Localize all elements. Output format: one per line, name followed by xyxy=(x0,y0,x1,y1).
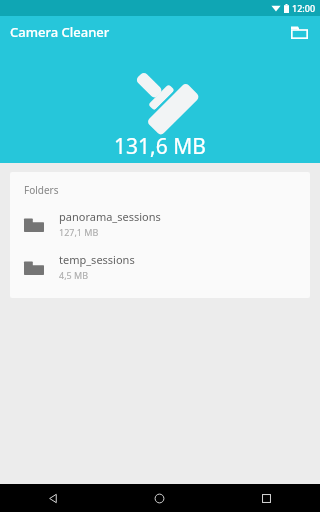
staticText: 127,1 MB xyxy=(59,226,99,238)
button[interactable]: Recent apps xyxy=(213,484,320,512)
button[interactable]: temp_sessions xyxy=(10,249,310,284)
staticText: 131,6 MB xyxy=(0,132,320,161)
button[interactable]: panorama_sessions xyxy=(10,206,310,241)
button[interactable]: Back xyxy=(0,484,106,512)
staticText: temp_sessions xyxy=(59,252,135,267)
button[interactable]: Home xyxy=(106,484,213,512)
staticText: Folders xyxy=(24,183,59,197)
staticText: panorama_sessions xyxy=(59,209,161,224)
staticText: 4,5 MB xyxy=(59,269,89,281)
button[interactable]: Open folder xyxy=(284,17,314,47)
staticText: Camera Cleaner xyxy=(10,23,110,41)
staticText: 12:00 xyxy=(292,2,316,14)
